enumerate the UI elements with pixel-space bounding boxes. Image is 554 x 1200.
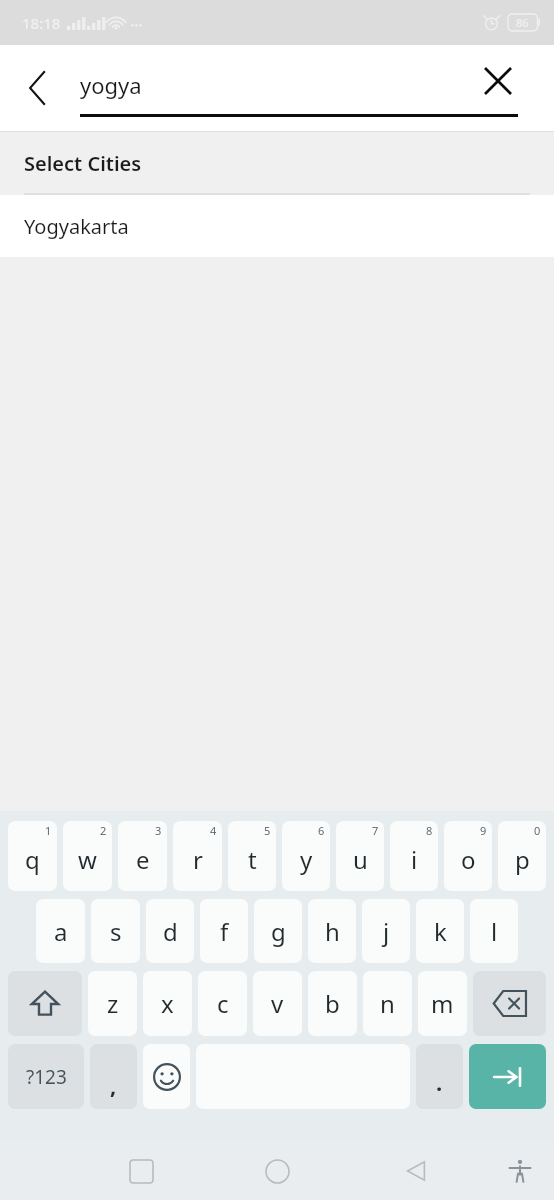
staticText: f <box>220 915 229 948</box>
button[interactable]: Clear <box>470 53 526 109</box>
button[interactable]: h <box>308 899 356 963</box>
button[interactable]: b <box>308 971 357 1036</box>
button[interactable]: v <box>253 971 302 1036</box>
button[interactable]: ?123 <box>8 1044 84 1109</box>
button[interactable]: Back <box>388 1143 444 1199</box>
button[interactable]: z <box>88 971 137 1036</box>
button[interactable]: m <box>418 971 467 1036</box>
staticText: c <box>217 987 229 1020</box>
staticText: p <box>515 843 530 876</box>
button[interactable]: x <box>143 971 192 1036</box>
staticText: Select Cities <box>24 150 142 177</box>
staticText: m <box>431 987 454 1020</box>
staticText: ?123 <box>26 1064 67 1090</box>
staticText: 4 <box>210 823 217 838</box>
staticText: . <box>436 1067 443 1097</box>
button[interactable]: y <box>282 821 330 891</box>
button[interactable]: w <box>63 821 112 891</box>
button[interactable]: l <box>470 899 518 963</box>
staticText: y <box>300 843 313 876</box>
button[interactable]: j <box>362 899 410 963</box>
button[interactable]: n <box>363 971 412 1036</box>
button[interactable]: , <box>90 1044 137 1109</box>
staticText: v <box>271 987 284 1020</box>
button[interactable]: q <box>8 821 57 891</box>
button[interactable]: r <box>173 821 222 891</box>
button[interactable]: Shift <box>8 971 82 1036</box>
staticText: s <box>110 915 122 948</box>
staticText: 18:18 <box>22 13 61 33</box>
staticText: 8 <box>426 823 433 838</box>
staticText: z <box>107 987 119 1020</box>
staticText: n <box>380 987 395 1020</box>
staticText: 9 <box>480 823 487 838</box>
staticText: q <box>25 843 40 876</box>
staticText: e <box>136 843 150 876</box>
staticText: Yogyakarta <box>24 213 129 240</box>
staticText: 7 <box>372 823 379 838</box>
button[interactable]: a <box>36 899 85 963</box>
staticText: h <box>325 915 340 948</box>
staticText: g <box>271 915 286 948</box>
staticText: r <box>193 843 203 876</box>
button[interactable]: Enter <box>469 1044 546 1109</box>
button[interactable]: e <box>118 821 167 891</box>
staticText: 0 <box>534 823 541 838</box>
staticText: u <box>353 843 368 876</box>
staticText: a <box>54 915 68 948</box>
staticText: t <box>248 843 257 876</box>
button[interactable]: . <box>416 1044 463 1109</box>
staticText: j <box>383 915 390 948</box>
button[interactable]: u <box>336 821 384 891</box>
staticText: o <box>461 843 476 876</box>
button[interactable]: g <box>254 899 302 963</box>
staticText: 2 <box>100 823 107 838</box>
staticText: 5 <box>264 823 271 838</box>
staticText: b <box>325 987 340 1020</box>
staticText: 3 <box>155 823 162 838</box>
staticText: w <box>78 843 97 876</box>
staticText: k <box>434 915 447 948</box>
button[interactable]: c <box>198 971 247 1036</box>
staticText: yogya <box>80 70 142 100</box>
staticText: l <box>491 915 498 948</box>
staticText: 1 <box>45 823 52 838</box>
button[interactable]: Home <box>249 1143 305 1199</box>
button[interactable]: p <box>498 821 546 891</box>
staticText: , <box>110 1070 117 1100</box>
staticText: 6 <box>318 823 325 838</box>
button[interactable]: Yogyakarta <box>0 195 554 257</box>
button[interactable]: k <box>416 899 464 963</box>
button[interactable]: o <box>444 821 492 891</box>
staticText: 86 <box>516 15 529 30</box>
button[interactable]: Emoji <box>143 1044 190 1109</box>
staticText: x <box>161 987 174 1020</box>
button[interactable]: t <box>228 821 276 891</box>
staticText: i <box>411 843 418 876</box>
button[interactable]: d <box>146 899 194 963</box>
button[interactable]: Recents <box>113 1143 169 1199</box>
button[interactable]: s <box>91 899 140 963</box>
button[interactable]: Backspace <box>473 971 546 1036</box>
button[interactable]: i <box>390 821 438 891</box>
staticText: d <box>163 915 178 948</box>
button[interactable]: Back <box>10 60 66 116</box>
button[interactable]: Accessibility <box>495 1146 545 1196</box>
button[interactable]: f <box>200 899 248 963</box>
button[interactable]: yogya <box>80 59 518 117</box>
